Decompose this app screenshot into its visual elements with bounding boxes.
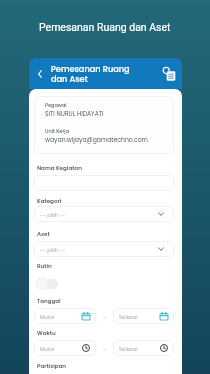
staticText: Partisipan	[37, 362, 67, 370]
button[interactable]: -- pilih --	[34, 241, 174, 257]
other: Pick date	[160, 312, 168, 320]
button[interactable]: Mulai	[34, 308, 96, 324]
other: Pick time	[160, 344, 168, 352]
button[interactable]: Back	[29, 58, 182, 89]
staticText: Nama Kegiatan	[37, 164, 82, 172]
staticText: -	[103, 345, 106, 352]
staticText: SITI NURUL HIDAYATI	[45, 110, 104, 119]
other: Pick time	[82, 344, 90, 352]
staticText: Mulai	[40, 313, 55, 320]
button[interactable]: Search document	[162, 67, 176, 81]
staticText: Aset	[37, 230, 50, 238]
staticText: Pemesanan Ruang dan Aset	[51, 63, 133, 85]
staticText: Waktu	[37, 329, 56, 337]
staticText: -- pilih --	[40, 211, 66, 218]
staticText: wayan.wijaya@gamatechno.com	[45, 136, 148, 145]
button[interactable]: Selesai	[113, 308, 174, 324]
button[interactable]: -- pilih --	[34, 206, 174, 222]
staticText: -- pilih --	[40, 246, 66, 253]
staticText: Tanggal	[37, 297, 61, 305]
staticText: Unit Kerja	[45, 128, 70, 135]
staticText: Pemesanan Ruang dan Aset	[39, 21, 171, 33]
staticText: Selesai	[119, 345, 138, 352]
staticText: Pegawai	[45, 102, 67, 109]
staticText: Selesai	[119, 313, 138, 320]
staticText: Rutin	[37, 262, 52, 270]
button[interactable]: Rutin toggle	[36, 277, 58, 290]
button[interactable]: Back	[34, 68, 46, 80]
staticText: -	[103, 313, 106, 320]
button[interactable]	[34, 175, 174, 191]
staticText: Kategori	[37, 197, 62, 205]
button[interactable]: Mulai	[34, 340, 96, 356]
button[interactable]: Selesai	[113, 340, 174, 356]
staticText: Mulai	[40, 345, 55, 352]
other: Pick date	[82, 312, 90, 320]
